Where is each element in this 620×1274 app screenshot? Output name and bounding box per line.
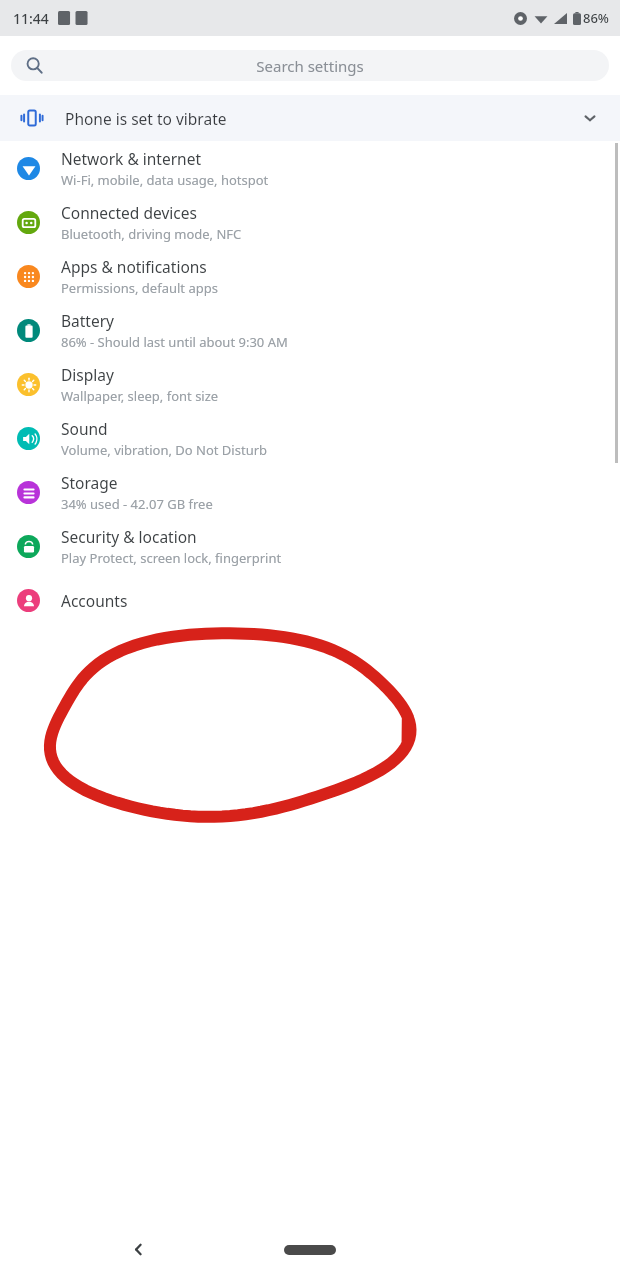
staticText: 11:44 bbox=[13, 9, 49, 28]
staticText: Wi-Fi, mobile, data usage, hotspot bbox=[61, 171, 269, 189]
button[interactable]: Network & internet bbox=[0, 141, 620, 195]
staticText: Security & location bbox=[61, 526, 197, 547]
staticText: Search settings bbox=[27, 56, 593, 76]
staticText: Network & internet bbox=[61, 148, 201, 169]
staticText: Apps & notifications bbox=[61, 256, 207, 277]
staticText: Sound bbox=[61, 418, 108, 439]
staticText: 86% bbox=[583, 9, 609, 27]
staticText: 34% used - 42.07 GB free bbox=[61, 495, 213, 513]
staticText: Accounts bbox=[61, 590, 128, 611]
staticText: Bluetooth, driving mode, NFC bbox=[61, 225, 242, 243]
staticText: Wallpaper, sleep, font size bbox=[61, 387, 219, 405]
button[interactable]: Sound bbox=[0, 411, 620, 465]
staticText: Play Protect, screen lock, fingerprint bbox=[61, 549, 282, 567]
button[interactable]: Apps & notifications bbox=[0, 249, 620, 303]
button[interactable]: Connected devices bbox=[0, 195, 620, 249]
staticText: 86% - Should last until about 9:30 AM bbox=[61, 333, 288, 351]
button[interactable]: Phone is set to vibrate bbox=[0, 95, 620, 141]
staticText: Volume, vibration, Do Not Disturb bbox=[61, 441, 268, 459]
button[interactable]: Battery bbox=[0, 303, 620, 357]
staticText: Display bbox=[61, 364, 114, 385]
staticText: Battery bbox=[61, 310, 115, 331]
button[interactable]: Home bbox=[284, 1245, 336, 1255]
staticText: Connected devices bbox=[61, 202, 197, 223]
button[interactable]: Back bbox=[120, 1231, 156, 1267]
button[interactable]: Security & location bbox=[0, 519, 620, 573]
button[interactable]: Search settings bbox=[11, 50, 609, 81]
staticText: Permissions, default apps bbox=[61, 279, 218, 297]
staticText: Phone is set to vibrate bbox=[65, 108, 227, 129]
staticText: Storage bbox=[61, 472, 118, 493]
button[interactable]: Accounts bbox=[0, 573, 620, 627]
button[interactable]: Storage bbox=[0, 465, 620, 519]
button[interactable]: Display bbox=[0, 357, 620, 411]
